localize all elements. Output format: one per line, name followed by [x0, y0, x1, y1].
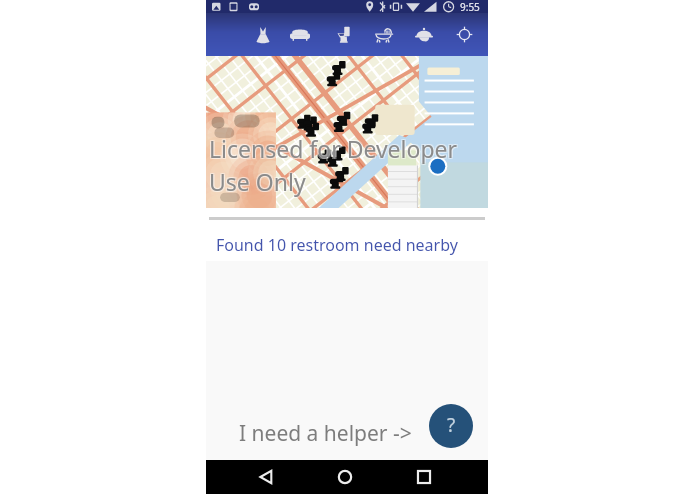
button[interactable]: Furniture	[281, 13, 319, 56]
staticText: Use Only	[208, 167, 305, 198]
button[interactable]: My location	[445, 13, 483, 56]
staticText: Use Only	[210, 165, 307, 196]
button[interactable]: Home	[328, 460, 362, 494]
staticText: Licensed for Developer	[209, 133, 458, 164]
staticText: Licensed for Developer	[208, 132, 457, 163]
button[interactable]: Back	[249, 460, 283, 494]
button[interactable]: Food	[405, 13, 443, 56]
staticText: Licensed for Developer	[210, 134, 459, 165]
staticText: Found 10 restroom need nearby	[216, 234, 458, 256]
staticText: Licensed for Developer	[210, 132, 459, 163]
button[interactable]: Recents	[407, 460, 441, 494]
staticText: Use Only	[209, 166, 306, 197]
staticText: Use Only	[210, 167, 307, 198]
button[interactable]: I need a helper ->	[239, 419, 412, 448]
button[interactable]: Restrooms	[324, 13, 362, 56]
button[interactable]: Bathtub	[365, 13, 403, 56]
button[interactable]: Help	[429, 404, 473, 448]
staticText: 9:55	[460, 0, 480, 13]
button[interactable]: Dresses	[244, 13, 282, 56]
staticText: ?	[447, 412, 456, 438]
button[interactable]: Found 10 restroom need nearby	[206, 222, 488, 261]
staticText: Licensed for Developer	[208, 134, 457, 165]
staticText: Use Only	[208, 165, 305, 196]
